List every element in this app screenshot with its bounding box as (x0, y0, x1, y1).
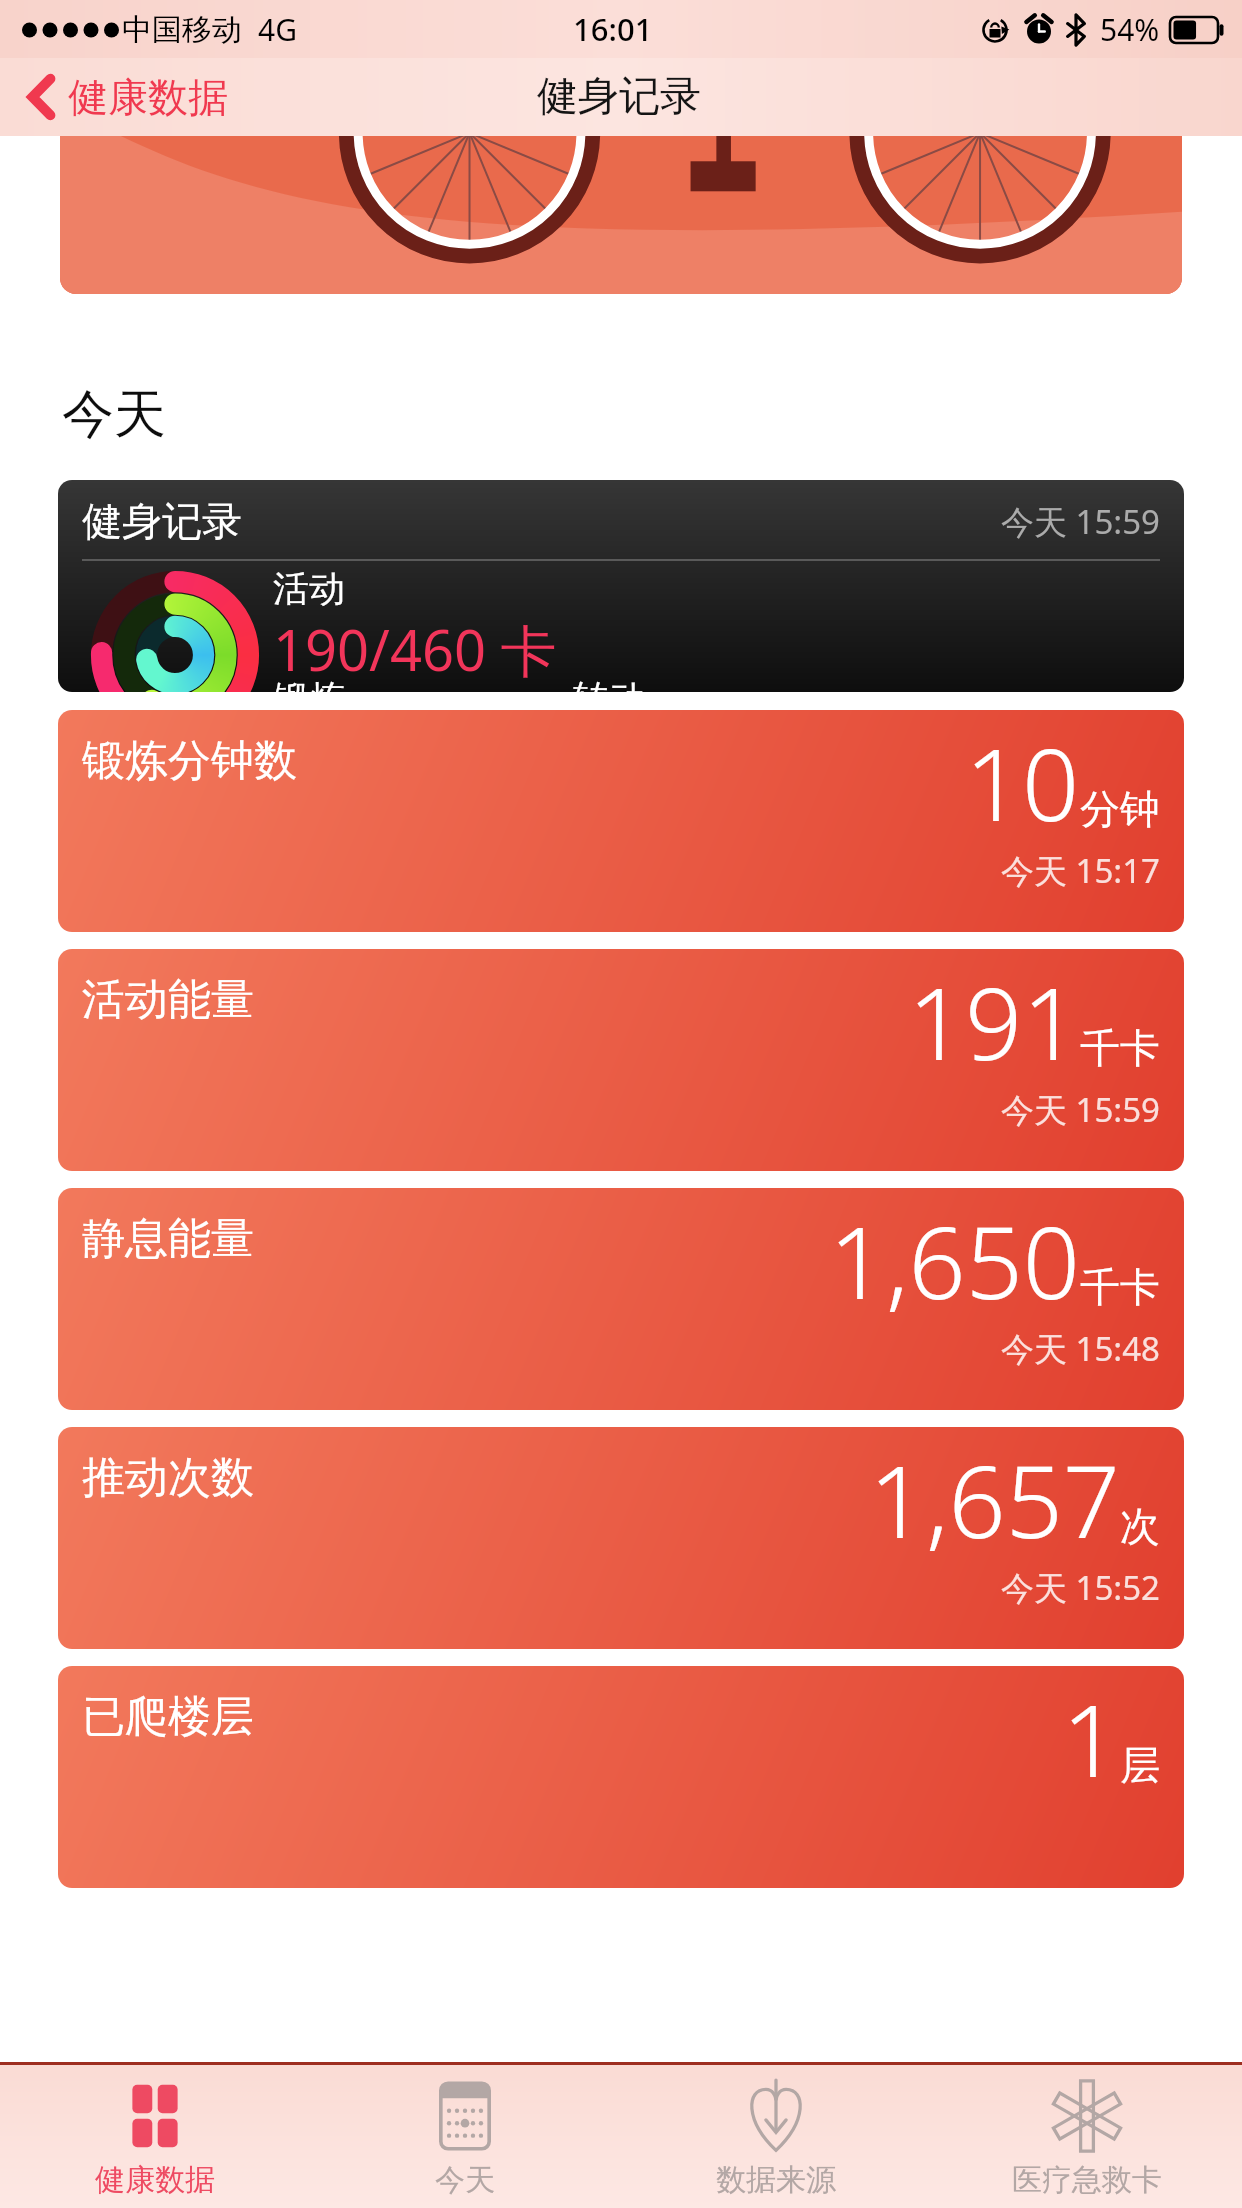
staticText: 活动 (273, 566, 345, 611)
staticText: 推动次数 (82, 1451, 254, 1505)
staticText: 转动 (573, 676, 645, 692)
staticText: 层 (1120, 1740, 1160, 1790)
staticText: 已爬楼层 (82, 1690, 254, 1744)
staticText: 千卡 (1080, 1023, 1160, 1073)
staticText: 190/460 卡 (273, 611, 557, 687)
button[interactable] (60, 136, 1182, 294)
staticText: 今天 15:52 (1001, 1565, 1160, 1610)
staticText: 活动能量 (82, 973, 254, 1027)
staticText: 今天 15:59 (1001, 1087, 1160, 1132)
other: Battery (1170, 17, 1224, 43)
other: 健康数据 (116, 2077, 194, 2155)
staticText: 医疗急救卡 (1012, 2161, 1162, 2199)
staticText: 分钟 (1080, 784, 1160, 834)
staticText: 静息能量 (82, 1212, 254, 1266)
staticText: 10 (965, 714, 1080, 850)
staticText: 今天 (435, 2161, 495, 2199)
staticText: 健身记录 (537, 71, 701, 123)
staticText: 健康数据 (68, 72, 228, 122)
other: Alarm (1024, 15, 1054, 45)
button[interactable]: 医疗急救卡 (931, 2065, 1242, 2208)
button[interactable]: 健身记录 (58, 480, 1184, 692)
button[interactable]: 静息能量 (58, 1188, 1184, 1410)
staticText: 今天 15:17 (1001, 848, 1160, 893)
button[interactable]: 锻炼分钟数 (58, 710, 1184, 932)
staticText: 锻炼 (273, 676, 345, 692)
staticText: 次 (1120, 1501, 1160, 1551)
button[interactable]: 活动能量 (58, 949, 1184, 1171)
other: 数据来源 (737, 2077, 815, 2155)
staticText: 今天 15:59 (1001, 499, 1160, 544)
button[interactable]: 推动次数 (58, 1427, 1184, 1649)
staticText: 1 (1062, 1670, 1120, 1806)
button[interactable]: 健康数据 (0, 2065, 310, 2208)
staticText: 今天 15:48 (1001, 1326, 1160, 1371)
button[interactable]: 健康数据 (28, 72, 228, 122)
other: 今天 (426, 2077, 504, 2155)
staticText: 1,657 (869, 1431, 1120, 1567)
staticText: 千卡 (1080, 1262, 1160, 1312)
staticText: 4G (258, 9, 297, 50)
staticText: 今天 (62, 382, 166, 448)
other: Rotation lock (982, 15, 1012, 45)
staticText: 54% (1100, 9, 1160, 50)
staticText: 1,650 (829, 1192, 1080, 1328)
staticText: 中国移动 (122, 11, 242, 49)
other: Bluetooth (1066, 14, 1086, 46)
button[interactable]: 数据来源 (620, 2065, 931, 2208)
staticText: 数据来源 (716, 2161, 836, 2199)
staticText: 16:01 (573, 8, 653, 50)
button[interactable]: 今天 (310, 2065, 620, 2208)
staticText: 锻炼分钟数 (82, 734, 297, 788)
staticText: 健身记录 (82, 496, 242, 546)
other: 医疗急救卡 (1048, 2077, 1126, 2155)
staticText: 191 (908, 953, 1080, 1089)
button[interactable]: 已爬楼层 (58, 1666, 1184, 1888)
staticText: 健康数据 (95, 2161, 215, 2199)
